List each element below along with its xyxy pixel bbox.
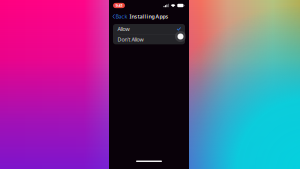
button[interactable]: Don't Allow (113, 34, 185, 44)
staticText: 9:41 (115, 3, 122, 8)
staticText: Don't Allow (117, 36, 143, 43)
staticText: Installing Apps (129, 13, 168, 20)
button[interactable]: Back (109, 11, 131, 22)
button[interactable]: Allow (113, 24, 185, 34)
staticText: Back (116, 13, 128, 20)
staticText: Allow (117, 25, 129, 33)
